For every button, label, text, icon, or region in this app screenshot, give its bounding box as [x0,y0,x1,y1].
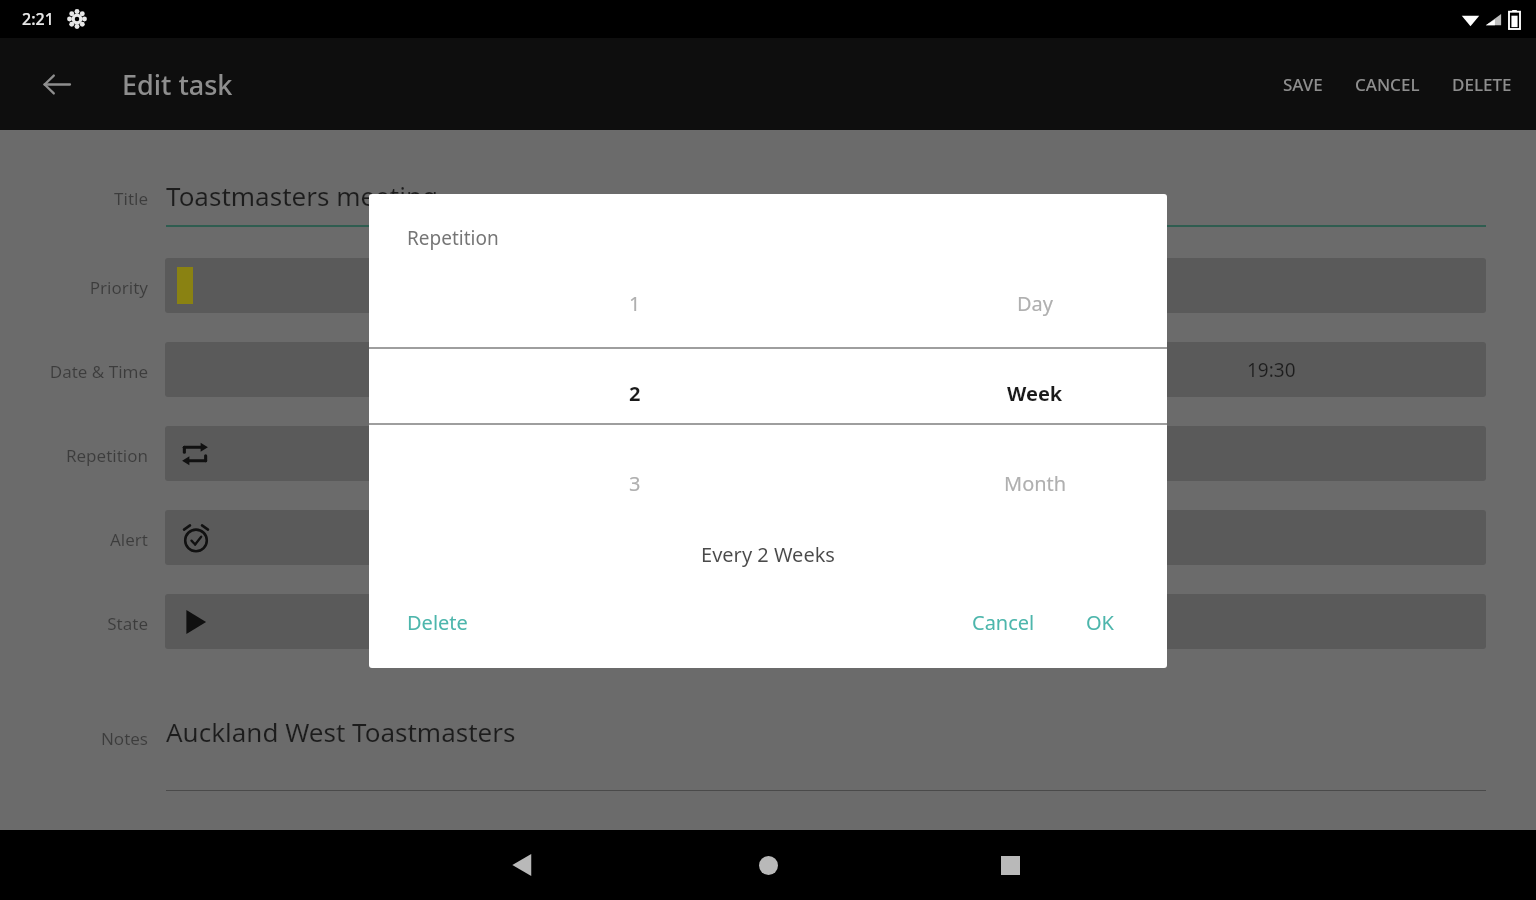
button[interactable]: 1 [535,280,735,326]
button[interactable] [165,510,1486,565]
staticText: DELETE [1452,73,1512,96]
button[interactable]: Delete [387,599,488,646]
staticText: Day [1017,290,1054,317]
staticText: Notes [8,727,148,750]
button[interactable]: Day [935,280,1135,326]
staticText: Title [48,187,148,210]
staticText: Date & Time [8,360,148,383]
staticText: Week [1007,380,1063,407]
staticText: Auckland West Toastmasters [166,714,516,749]
staticText: Repetition [8,444,148,467]
button[interactable]: OK [1066,599,1134,646]
staticText: 1 [629,290,641,317]
staticText: Month [1004,470,1067,497]
button[interactable]: CANCEL [1339,61,1436,108]
staticText: State [8,612,148,635]
staticText: Alert [8,528,148,551]
staticText: Priority [8,276,148,299]
staticText: 19:30 [1247,357,1296,383]
button[interactable] [165,258,1486,313]
button[interactable] [165,594,1486,649]
button[interactable]: DELETE [1436,61,1528,108]
staticText: 3 [629,470,641,497]
staticText: CANCEL [1355,73,1420,96]
staticText: Delete [407,609,468,636]
button[interactable]: 2 [535,370,735,416]
button[interactable]: Week [935,370,1135,416]
button[interactable]: 3 [535,460,735,506]
staticText: Edit task [122,66,233,103]
button[interactable]: Month [935,460,1135,506]
staticText: 2 [629,380,641,407]
staticText: Repetition [407,225,499,251]
button[interactable]: Back [32,60,80,108]
staticText: Cancel [972,609,1035,636]
button[interactable]: Cancel [952,599,1055,646]
button[interactable] [165,426,1486,481]
staticText: Toastmasters meeting [166,178,438,213]
button[interactable]: Recent apps [980,835,1040,895]
button[interactable]: SAVE [1267,61,1339,108]
staticText: SAVE [1283,73,1323,96]
staticText: OK [1086,609,1114,636]
staticText: 2:21 [22,8,54,30]
staticText: Every 2 Weeks [369,541,1167,568]
button[interactable]: Home [738,835,798,895]
button[interactable]: Back [492,835,552,895]
button[interactable]: 19:30 [165,342,1486,397]
